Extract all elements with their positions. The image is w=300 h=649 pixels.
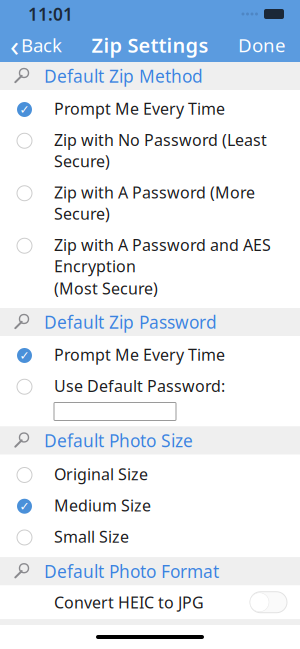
staticText: Small Size — [54, 526, 129, 547]
button[interactable]: Convert HEIC to JPG — [0, 585, 300, 619]
staticText: Zip Settings — [91, 32, 208, 58]
button[interactable]: Zip with A Password and AES Encryption — [0, 229, 300, 304]
button[interactable]: ✓ — [0, 93, 300, 124]
staticText: Default Photo Format — [44, 560, 219, 583]
staticText: Convert HEIC to JPG — [54, 592, 204, 613]
button[interactable]: Use Default Password: — [0, 370, 300, 401]
button[interactable]: ✓ — [0, 339, 300, 370]
button[interactable]: Done — [238, 27, 300, 63]
staticText: Default Photo Size — [44, 429, 193, 452]
staticText: Original Size — [54, 463, 148, 485]
button[interactable]: Small Size — [0, 521, 300, 552]
staticText: Prompt Me Every Time — [54, 344, 225, 365]
staticText: Default Zip Password — [44, 310, 217, 333]
staticText: ✓ — [19, 103, 29, 116]
staticText: Prompt Me Every Time — [54, 98, 225, 119]
staticText: Zip with No Password (Least Secure) — [54, 129, 267, 172]
staticText: Done — [238, 33, 286, 57]
staticText: Use Default Password: — [54, 375, 225, 396]
staticText: ✓ — [19, 349, 29, 362]
staticText: Default Zip Method — [44, 64, 203, 87]
staticText: Zip with A Password (More Secure) — [54, 182, 255, 224]
button[interactable]: ‹ — [0, 19, 62, 70]
staticText: (Most Secure) — [54, 278, 158, 299]
button[interactable]: Zip with No Password (Least Secure) — [0, 124, 300, 177]
staticText: 11:01 — [28, 2, 73, 25]
button[interactable]: Original Size — [0, 458, 300, 490]
staticText: Back — [21, 33, 62, 57]
button[interactable]: Zip with A Password (More Secure) — [0, 177, 300, 229]
button[interactable]: ✓ — [0, 490, 300, 521]
staticText: ‹ — [10, 25, 19, 64]
staticText: Medium Size — [54, 495, 151, 516]
staticText: ✓ — [19, 499, 29, 513]
staticText: Zip with A Password and AES Encryption — [54, 234, 271, 277]
